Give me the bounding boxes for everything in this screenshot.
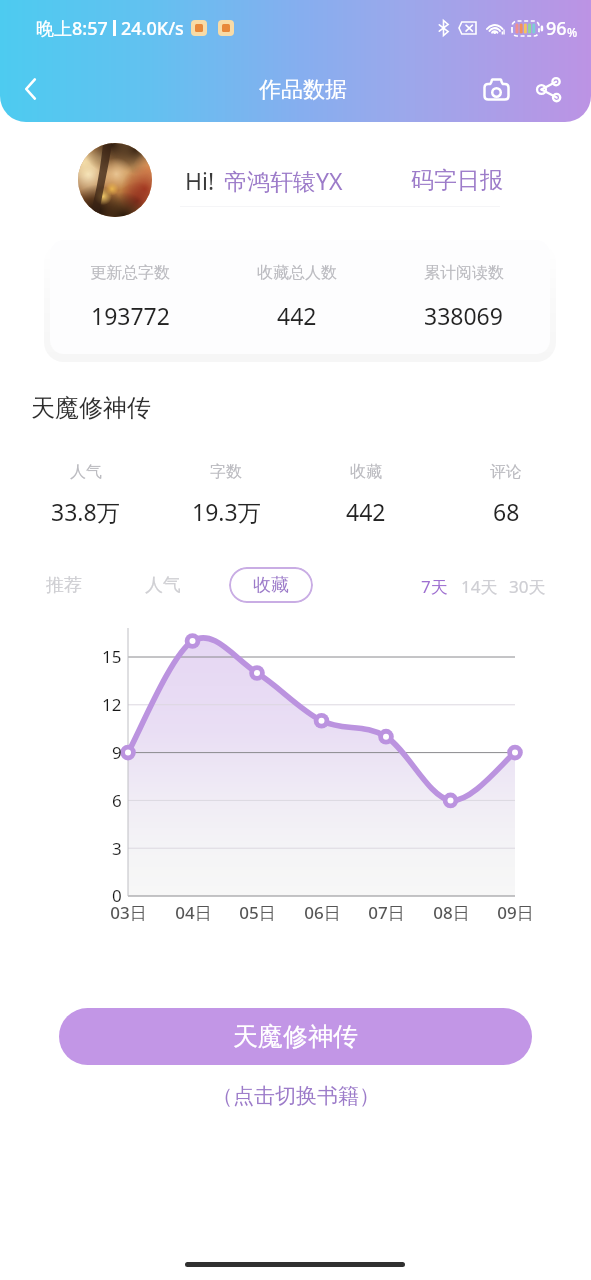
staticText: 08日 <box>433 901 470 924</box>
staticText: 码字日报 <box>411 166 503 195</box>
button[interactable]: 码字日报 <box>411 158 503 203</box>
staticText: 33.8万 <box>51 496 120 527</box>
button[interactable] <box>78 143 152 217</box>
staticText: 帝鸿轩辕YX <box>224 165 343 196</box>
staticText: 24.0K/s <box>121 16 184 41</box>
staticText: 推荐 <box>46 574 82 597</box>
staticText: 96 <box>546 16 567 41</box>
button[interactable]: 人气 <box>15 462 156 527</box>
button[interactable]: 更新总字数 <box>47 240 213 354</box>
staticText: 05日 <box>239 901 276 924</box>
staticText: 30天 <box>509 575 546 598</box>
staticText: 天魔修神传 <box>31 393 151 423</box>
staticText: 338069 <box>424 300 503 331</box>
staticText: 晚上8:57 <box>36 16 108 41</box>
staticText: 9 <box>112 741 122 764</box>
staticText: 7天 <box>421 575 448 598</box>
staticText: 字数 <box>210 462 242 482</box>
button[interactable]: 7天 <box>418 572 451 601</box>
staticText: % <box>567 24 578 40</box>
staticText: 6 <box>112 789 122 812</box>
staticText: 人气 <box>145 574 181 597</box>
button[interactable]: （点击切换书籍） <box>208 1079 384 1113</box>
staticText: 人气 <box>70 462 102 482</box>
button[interactable]: 字数 <box>156 462 296 527</box>
staticText: 收藏 <box>253 574 289 597</box>
button[interactable]: Camera <box>470 63 522 115</box>
staticText: 03日 <box>110 901 147 924</box>
staticText: 收藏总人数 <box>257 263 337 283</box>
staticText: 442 <box>277 300 317 331</box>
staticText: Hi! <box>185 165 215 196</box>
button[interactable]: 评论 <box>436 462 576 527</box>
staticText: 09日 <box>497 901 534 924</box>
staticText: 更新总字数 <box>90 263 170 283</box>
button[interactable]: 天魔修神传 <box>31 393 151 423</box>
button[interactable]: 收藏总人数 <box>213 240 380 354</box>
staticText: 04日 <box>175 901 212 924</box>
staticText: 15 <box>102 645 122 668</box>
button[interactable]: 人气 <box>141 570 185 601</box>
staticText: 0 <box>112 884 122 907</box>
staticText: 作品数据 <box>259 76 347 104</box>
button[interactable]: 收藏 <box>229 567 313 603</box>
staticText: 07日 <box>368 901 405 924</box>
button[interactable]: 14天 <box>458 572 501 601</box>
staticText: 评论 <box>490 462 522 482</box>
staticText: 累计阅读数 <box>424 263 504 283</box>
staticText: 14天 <box>461 575 498 598</box>
staticText: （点击切换书籍） <box>212 1083 380 1109</box>
button[interactable]: 推荐 <box>42 570 86 601</box>
button[interactable]: 30天 <box>506 572 549 601</box>
staticText: 19.3万 <box>192 496 261 527</box>
staticText: 06日 <box>304 901 341 924</box>
staticText: 12 <box>102 693 122 716</box>
staticText: 68 <box>493 496 520 527</box>
button[interactable]: Share <box>522 63 574 115</box>
button[interactable]: 天魔修神传 <box>59 1008 532 1065</box>
staticText: 3 <box>112 837 122 860</box>
button[interactable]: 收藏 <box>296 462 436 527</box>
button[interactable]: Back <box>5 63 57 115</box>
staticText: 收藏 <box>350 462 382 482</box>
staticText: 193772 <box>91 300 170 331</box>
staticText: 天魔修神传 <box>233 1021 358 1052</box>
staticText: 442 <box>346 496 386 527</box>
button[interactable]: 累计阅读数 <box>380 240 547 354</box>
